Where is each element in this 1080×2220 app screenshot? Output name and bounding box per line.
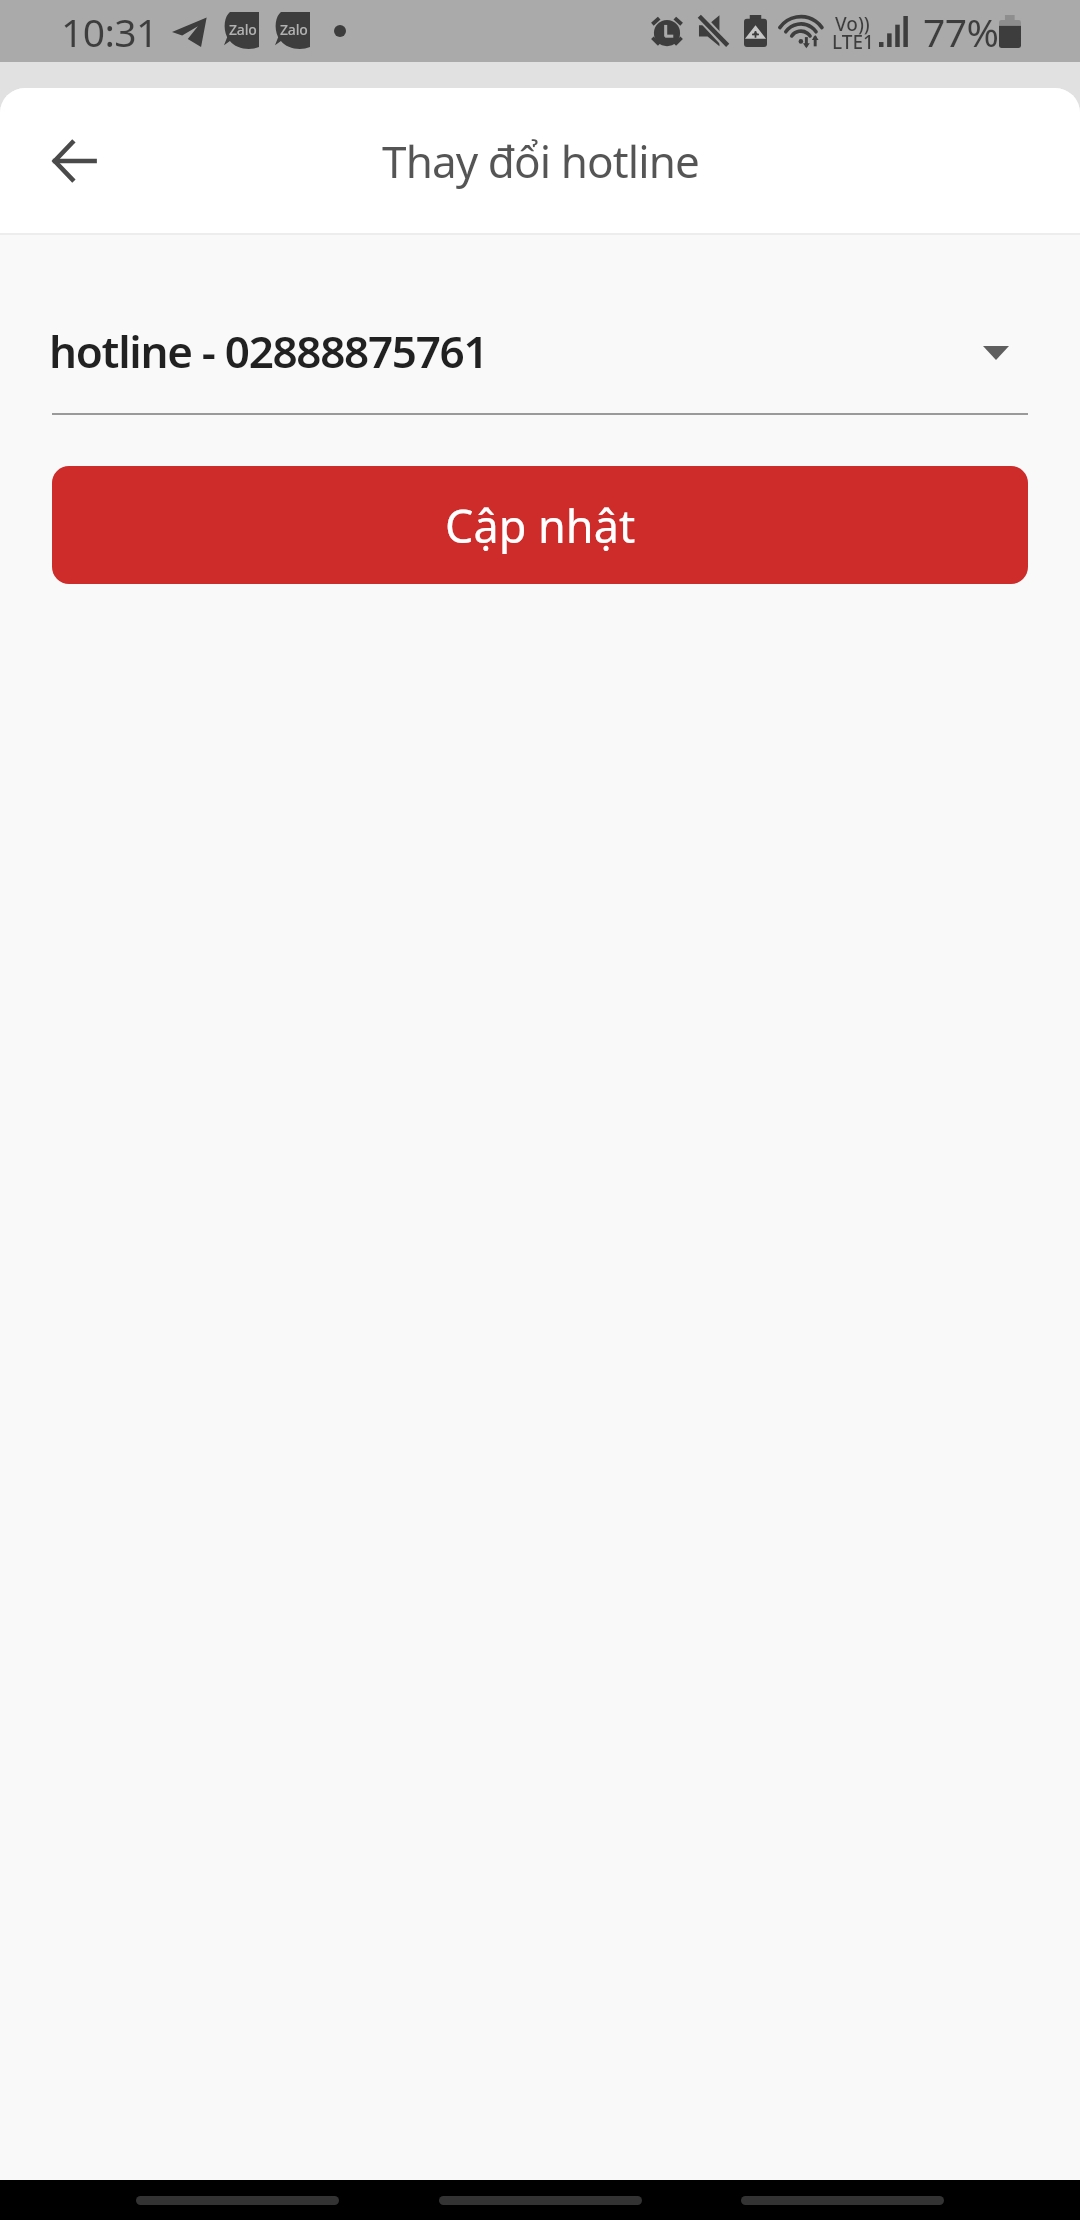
staticText: Zalo bbox=[229, 20, 257, 39]
staticText: hotline - 02888875761 bbox=[49, 321, 999, 381]
button[interactable]: Back bbox=[28, 113, 124, 209]
button[interactable]: Recents bbox=[741, 2196, 944, 2205]
button[interactable]: Cập nhật bbox=[52, 466, 1028, 584]
button[interactable]: Back bbox=[136, 2196, 339, 2205]
staticText: 77% bbox=[923, 5, 999, 58]
staticText: Vo)) bbox=[835, 11, 870, 37]
button[interactable]: Home bbox=[439, 2196, 642, 2205]
button[interactable]: Chọn hotline bbox=[52, 310, 1028, 413]
staticText: LTE1 bbox=[832, 29, 874, 55]
staticText: Zalo bbox=[280, 20, 308, 39]
staticText: 10:31 bbox=[61, 5, 158, 58]
staticText: Thay đổi hotline bbox=[382, 131, 699, 191]
staticText: Cập nhật bbox=[445, 495, 636, 556]
